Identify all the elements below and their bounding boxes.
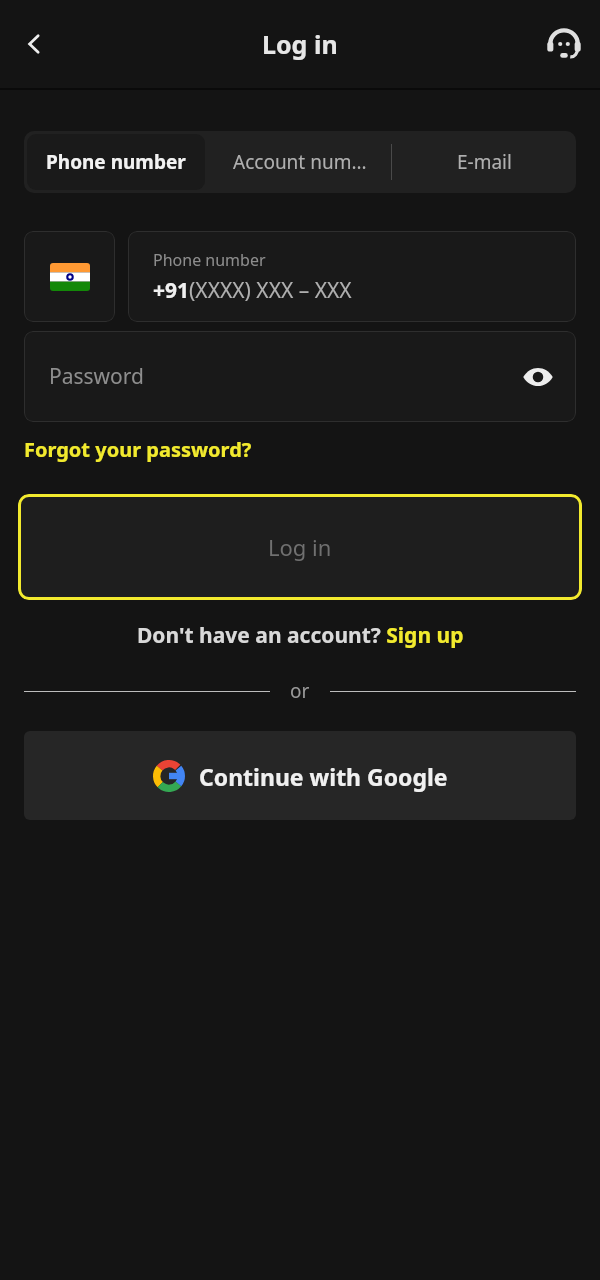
button[interactable]: Select country code [24, 231, 115, 322]
staticText: Password [49, 362, 144, 391]
staticText: Phone number [153, 249, 266, 271]
button[interactable]: Log in [18, 494, 582, 600]
button[interactable]: Account num... [208, 131, 391, 193]
staticText: E-mail [457, 149, 512, 175]
button[interactable]: Back [6, 16, 62, 72]
staticText: Account num... [233, 149, 367, 175]
staticText: Don't have an account? Sign up [137, 621, 464, 650]
staticText: +91(XXXX) XXX – XXX [153, 276, 352, 305]
button[interactable]: Continue with Google [24, 731, 576, 820]
button[interactable]: Forgot your password? [24, 436, 252, 463]
button[interactable]: Phone number [128, 231, 576, 322]
button[interactable]: Password [24, 331, 576, 422]
button[interactable]: Phone number [27, 134, 205, 190]
staticText: Log in [268, 532, 332, 562]
button[interactable]: Show password [514, 353, 562, 401]
staticText: Continue with Google [199, 761, 448, 792]
button[interactable]: E-mail [392, 131, 576, 193]
button[interactable]: Customer support [536, 16, 592, 72]
staticText: or [290, 678, 310, 704]
staticText: Phone number [46, 149, 186, 175]
button[interactable]: Don't have an account? Sign up [0, 621, 600, 650]
staticText: Log in [262, 27, 338, 61]
